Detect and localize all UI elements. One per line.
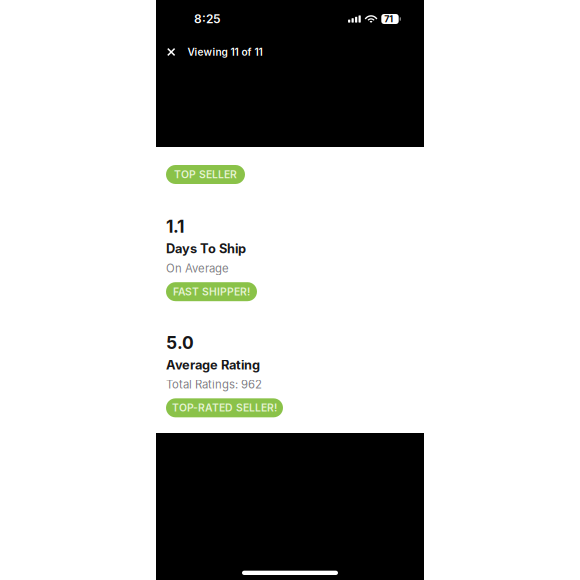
- staticText: 5.0: [166, 332, 194, 353]
- staticText: Viewing 11 of 11: [187, 46, 262, 58]
- button[interactable]: TOP-RATED SELLER!: [166, 398, 283, 417]
- button[interactable]: FAST SHIPPER!: [166, 282, 257, 301]
- staticText: TOP SELLER: [174, 168, 237, 181]
- staticText: TOP-RATED SELLER!: [172, 402, 277, 414]
- staticText: Total Ratings: 962: [166, 378, 262, 391]
- staticText: Average Rating: [166, 357, 260, 373]
- button[interactable]: Close, Viewing 11 of 11: [156, 41, 424, 63]
- staticText: On Average: [166, 261, 229, 275]
- staticText: 8:25: [194, 12, 221, 26]
- staticText: FAST SHIPPER!: [173, 285, 250, 298]
- staticText: Days To Ship: [166, 241, 246, 256]
- staticText: 71: [384, 14, 393, 24]
- staticText: 1.1: [166, 216, 184, 237]
- button[interactable]: TOP SELLER: [166, 165, 245, 184]
